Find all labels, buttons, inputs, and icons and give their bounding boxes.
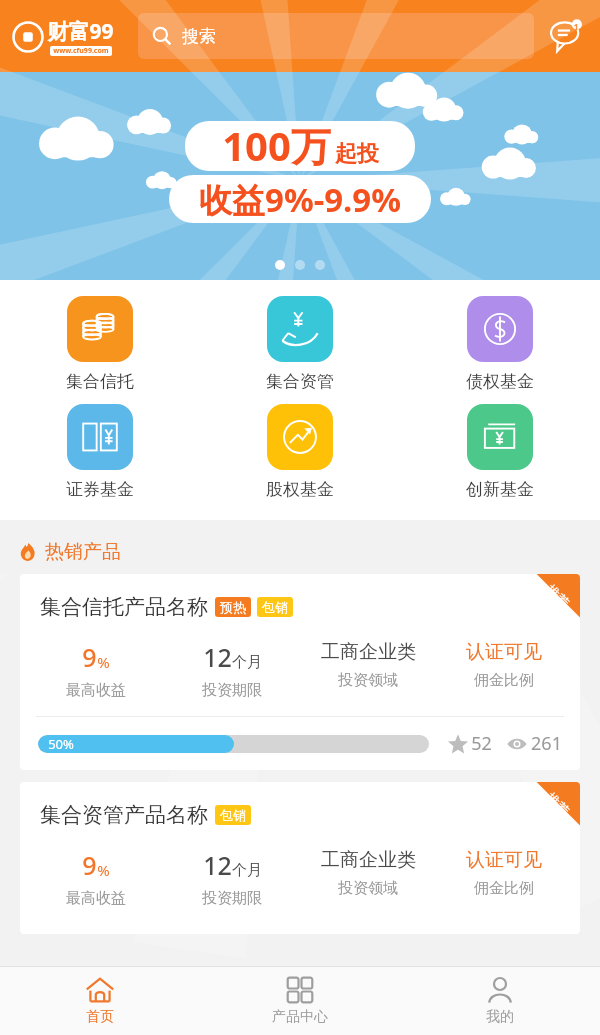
staticText: 100万 [222,118,331,173]
button[interactable] [315,260,325,270]
staticText: 集合信托 [66,371,134,392]
staticText: 创新基金 [466,479,534,500]
staticText: 集合资管 [266,371,334,392]
staticText: 12 [203,848,232,882]
staticText: 财富99 [47,17,114,46]
staticText: 认证可见 [466,640,542,664]
staticText: 我的 [486,1008,514,1026]
staticText: 股权基金 [266,479,334,500]
staticText: 投资期限 [202,889,262,908]
button[interactable]: 集合信托产品名称 [20,574,580,770]
staticText: % [97,652,110,672]
staticText: 投资领域 [338,879,398,898]
staticText: 首页 [86,1008,114,1026]
staticText: 50% [48,735,74,753]
staticText: 工商企业类 [321,640,416,664]
staticText: 产品中心 [272,1008,328,1026]
staticText: 1 [573,20,579,32]
button[interactable] [275,260,285,270]
staticText: 热销产品 [45,540,121,564]
staticText: 预热 [220,599,246,615]
staticText: 261 [531,731,562,756]
button[interactable]: 股权基金 [200,398,400,506]
staticText: 个月 [232,653,262,672]
button[interactable]: 集合资管 [200,290,400,398]
staticText: 9 [82,848,97,882]
button[interactable]: Messages [544,14,588,58]
staticText: 12 [203,640,232,674]
staticText: 证券基金 [66,479,134,500]
staticText: 52 [471,731,492,756]
staticText: 搜索 [182,26,216,47]
staticText: 包销 [220,807,246,823]
staticText: 推荐 [543,581,573,611]
button[interactable]: 集合资管产品名称 [20,782,580,934]
staticText: 投资期限 [202,681,262,700]
button[interactable]: 财富99 logo [12,11,130,61]
staticText: 认证可见 [466,848,542,872]
staticText: 佣金比例 [474,879,534,898]
button[interactable]: 搜索 [138,13,534,59]
button[interactable]: 产品中心 [200,967,400,1035]
staticText: 债权基金 [466,371,534,392]
staticText: 推荐 [543,789,573,819]
staticText: 个月 [232,861,262,880]
staticText: 包销 [262,599,288,615]
button[interactable]: 首页 [0,967,200,1035]
staticText: 9 [82,640,97,674]
button[interactable] [295,260,305,270]
staticText: 起投 [335,140,379,168]
staticText: 最高收益 [66,681,126,700]
button[interactable]: 债权基金 [400,290,600,398]
button[interactable]: 我的 [400,967,600,1035]
staticText: 佣金比例 [474,671,534,690]
staticText: % [97,860,110,880]
staticText: 最高收益 [66,889,126,908]
button[interactable]: 证券基金 [0,398,200,506]
staticText: 投资领域 [338,671,398,690]
button[interactable]: 集合信托 [0,290,200,398]
staticText: 集合信托产品名称 [40,594,208,620]
staticText: www.cfu99.com [53,46,109,56]
staticText: 收益9%-9.9% [199,177,401,222]
button[interactable]: 创新基金 [400,398,600,506]
staticText: 集合资管产品名称 [40,802,208,828]
staticText: 工商企业类 [321,848,416,872]
